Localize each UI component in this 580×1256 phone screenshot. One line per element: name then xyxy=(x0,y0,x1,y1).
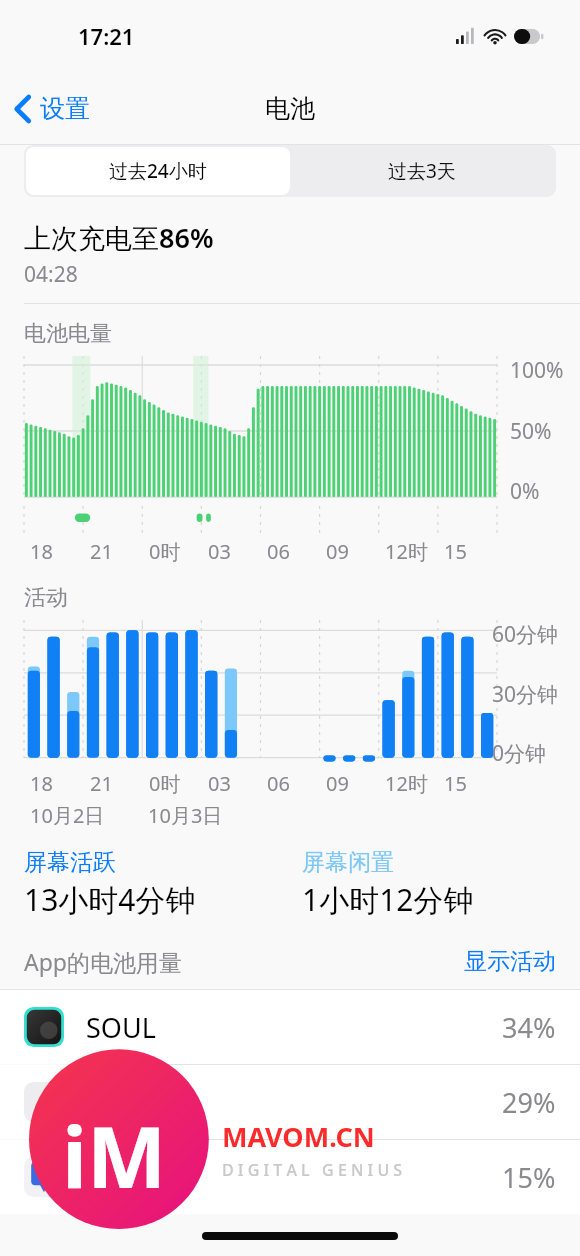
staticText: 0分钟 xyxy=(492,739,547,768)
staticText: 21 xyxy=(90,770,113,797)
staticText: 06 xyxy=(267,538,290,565)
staticText: 34% xyxy=(502,1009,556,1046)
staticText: 18 xyxy=(30,538,53,565)
staticText: 29% xyxy=(502,1084,556,1121)
button[interactable]: 百度贴吧 xyxy=(0,1140,580,1214)
staticText: 屏幕闲置 xyxy=(302,848,394,877)
staticText: 60分钟 xyxy=(492,620,559,649)
staticText: 15 xyxy=(444,538,467,565)
staticText: 0% xyxy=(510,477,540,506)
staticText: 设置 xyxy=(40,93,90,124)
staticText: 10月3日 xyxy=(148,802,223,829)
staticText: 10月2日 xyxy=(30,802,105,829)
staticText: 15% xyxy=(502,1159,556,1196)
staticText: 21 xyxy=(90,538,113,565)
staticText: 15 xyxy=(444,770,467,797)
button[interactable]: 设置 xyxy=(0,87,100,130)
staticText: 04:28 xyxy=(24,260,78,289)
staticText: 12时 xyxy=(385,538,428,565)
staticText: 03 xyxy=(208,538,231,565)
staticText: MAVOM.CN xyxy=(222,1118,375,1155)
button[interactable]: 29% xyxy=(0,1065,580,1139)
staticText: 过去24小时 xyxy=(109,158,207,184)
staticText: 100% xyxy=(510,356,564,385)
staticText: 03 xyxy=(208,770,231,797)
staticText: 06 xyxy=(267,770,290,797)
button[interactable]: 过去24小时 xyxy=(26,147,290,195)
staticText: App的电池用量 xyxy=(24,946,182,977)
staticText: 屏幕活跃 xyxy=(24,848,116,877)
staticText: 1小时12分钟 xyxy=(302,879,474,920)
staticText: 18 xyxy=(30,770,53,797)
button[interactable]: 显示活动 xyxy=(464,947,556,976)
staticText: iM xyxy=(62,1098,167,1212)
staticText: 活动 xyxy=(24,584,68,612)
staticText: 电池 xyxy=(265,93,315,124)
staticText: 09 xyxy=(326,770,349,797)
staticText: 30分钟 xyxy=(492,680,559,709)
button[interactable]: SOUL xyxy=(0,990,580,1064)
staticText: 17:21 xyxy=(78,21,135,51)
staticText: 50% xyxy=(510,417,552,446)
staticText: 0时 xyxy=(149,538,181,565)
staticText: 13小时4分钟 xyxy=(24,879,196,920)
staticText: 上次充电至86% xyxy=(24,219,214,256)
staticText: 电池电量 xyxy=(24,320,112,348)
staticText: 百度贴吧 xyxy=(86,1160,194,1194)
staticText: 12时 xyxy=(385,770,428,797)
staticText: 09 xyxy=(326,538,349,565)
staticText: D I G I T A L G E N I U S xyxy=(222,1159,403,1181)
staticText: 0时 xyxy=(149,770,181,797)
staticText: 过去3天 xyxy=(388,158,456,184)
staticText: SOUL xyxy=(86,1009,156,1046)
button[interactable]: 过去3天 xyxy=(290,147,554,195)
staticText: 显示活动 xyxy=(464,947,556,976)
